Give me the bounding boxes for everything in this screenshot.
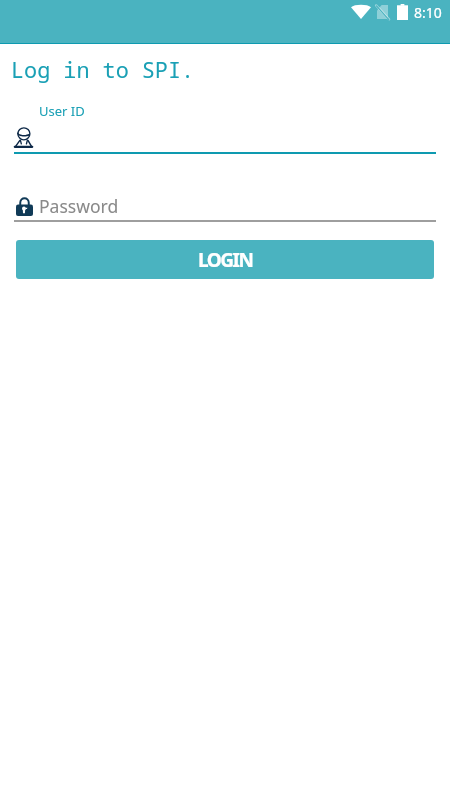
button[interactable]: User ID bbox=[14, 98, 436, 154]
button[interactable]: Password bbox=[14, 190, 436, 222]
button[interactable]: LOGIN bbox=[16, 240, 434, 279]
staticText: 8:10 bbox=[414, 3, 442, 22]
staticText: LOGIN bbox=[198, 247, 253, 273]
staticText: User ID bbox=[39, 102, 85, 120]
staticText: Log in to SPI. bbox=[11, 55, 195, 85]
staticText: Password bbox=[39, 194, 119, 218]
